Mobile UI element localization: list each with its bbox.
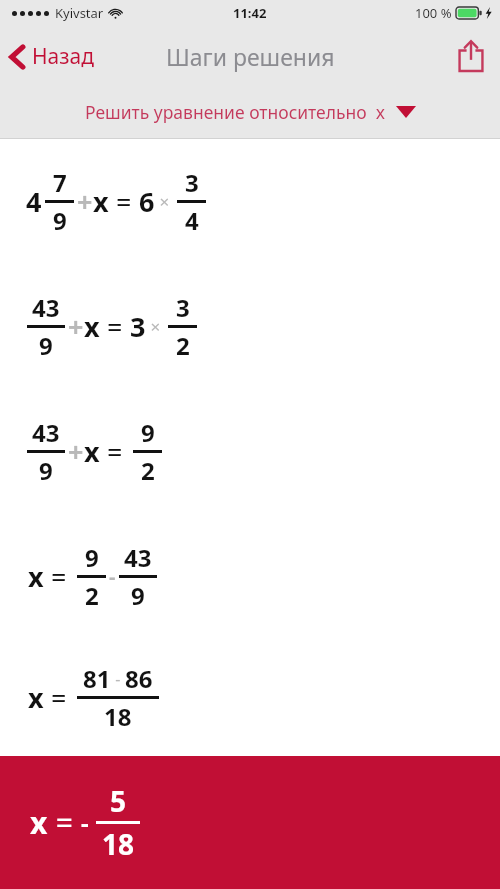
staticText: + <box>68 433 84 470</box>
staticText: = <box>44 679 74 716</box>
staticText: x <box>28 679 44 716</box>
staticText: 18 <box>102 825 135 863</box>
button[interactable]: Решить уравнение относительно x <box>0 86 500 138</box>
staticText: Kyivstar <box>55 4 104 22</box>
staticText: 11:42 <box>233 4 267 22</box>
button[interactable]: Share <box>450 32 492 80</box>
staticText: 3 <box>185 166 199 199</box>
staticText: 9 <box>141 416 155 449</box>
staticText: 7 <box>53 166 67 199</box>
staticText: 2 <box>141 454 155 487</box>
staticText: × <box>146 315 165 338</box>
staticText: + <box>77 183 93 220</box>
staticText: x <box>84 308 100 345</box>
staticText: 4 <box>26 183 42 220</box>
staticText: 9 <box>85 541 99 574</box>
staticText: 3 <box>176 291 190 324</box>
staticText: 43 <box>124 541 152 574</box>
button[interactable]: Назад <box>0 36 104 77</box>
staticText: = <box>44 558 74 595</box>
staticText: x <box>28 558 44 595</box>
staticText: 81 <box>83 662 111 695</box>
staticText: x <box>84 433 100 470</box>
staticText: 9 <box>53 204 67 237</box>
staticText: = <box>100 308 130 345</box>
staticText: - <box>111 668 125 690</box>
staticText: 18 <box>104 700 132 733</box>
staticText: Шаги решения <box>166 41 335 72</box>
staticText: = <box>109 183 139 220</box>
staticText: × <box>155 190 174 213</box>
staticText: 100 % <box>415 4 452 22</box>
staticText: 6 <box>139 183 155 220</box>
staticText: x <box>30 802 48 843</box>
staticText: Назад <box>32 42 94 71</box>
staticText: 4 <box>185 204 199 237</box>
staticText: = <box>48 802 81 843</box>
staticText: 2 <box>85 579 99 612</box>
staticText: - <box>81 806 89 839</box>
staticText: x <box>93 183 109 220</box>
staticText: 9 <box>131 579 145 612</box>
staticText: = <box>100 433 130 470</box>
staticText: 9 <box>39 329 53 362</box>
staticText: 2 <box>176 329 190 362</box>
staticText: 43 <box>32 291 60 324</box>
staticText: 86 <box>125 662 153 695</box>
staticText: 43 <box>32 416 60 449</box>
staticText: 3 <box>130 308 146 345</box>
staticText: Решить уравнение относительно x <box>85 100 386 124</box>
staticText: 5 <box>110 782 127 820</box>
staticText: + <box>68 308 84 345</box>
staticText: 9 <box>39 454 53 487</box>
staticText: - <box>109 563 116 590</box>
